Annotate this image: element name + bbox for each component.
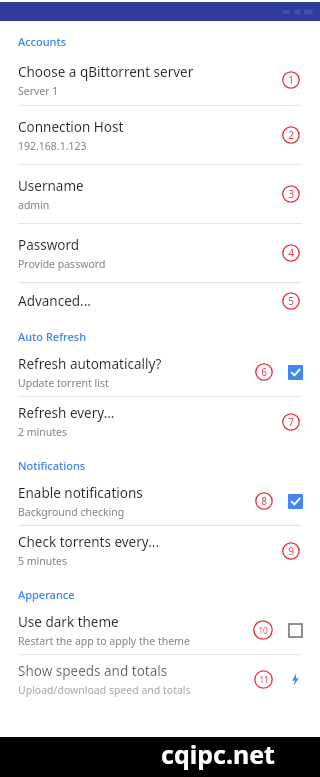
- staticText: Provide password: [18, 257, 106, 271]
- staticText: Username: [18, 177, 84, 195]
- staticText: Password: [18, 236, 80, 254]
- staticText: Update torrent list: [18, 376, 109, 390]
- staticText: 3: [288, 187, 294, 201]
- staticText: Choose a qBittorrent server: [18, 63, 194, 81]
- button[interactable]: Refresh automatically?: [0, 348, 320, 396]
- staticText: Background checking: [18, 505, 125, 519]
- staticText: Check torrents every...: [18, 533, 160, 551]
- button[interactable]: Use dark theme: [0, 606, 320, 654]
- button[interactable]: Enabled, checkbox: [288, 494, 303, 509]
- staticText: Restart the app to apply the theme: [18, 634, 190, 648]
- staticText: cqipc.net: [161, 737, 275, 771]
- button[interactable]: Show speeds: [288, 672, 303, 687]
- button[interactable]: Advanced...: [0, 283, 320, 319]
- staticText: admin: [18, 198, 50, 212]
- staticText: Connection Host: [18, 118, 124, 136]
- button[interactable]: Choose a qBittorrent server: [0, 55, 320, 105]
- staticText: 5: [288, 294, 294, 308]
- button[interactable]: Check torrents every...: [0, 526, 320, 575]
- button[interactable]: Show speeds and totals: [0, 655, 320, 704]
- staticText: 7: [288, 415, 294, 429]
- staticText: 1: [288, 73, 294, 87]
- staticText: Advanced...: [18, 292, 91, 310]
- staticText: 4: [288, 246, 294, 260]
- staticText: Upload/download speed and totals: [18, 683, 191, 697]
- staticText: 2: [288, 128, 294, 142]
- staticText: 2 minutes: [18, 425, 67, 439]
- staticText: Apperance: [18, 587, 320, 602]
- button[interactable]: Password: [0, 224, 320, 282]
- staticText: Enable notifications: [18, 484, 143, 502]
- button[interactable]: Enabled, checkbox: [288, 365, 303, 380]
- staticText: Server 1: [18, 84, 59, 98]
- button[interactable]: Connection Host: [0, 106, 320, 164]
- staticText: Show speeds and totals: [18, 662, 168, 680]
- staticText: Use dark theme: [18, 613, 119, 631]
- staticText: 192.168.1.123: [18, 139, 87, 153]
- staticText: Auto Refresh: [18, 329, 320, 344]
- button[interactable]: Enable notifications: [0, 477, 320, 525]
- staticText: 11: [259, 674, 269, 685]
- staticText: 8: [261, 494, 267, 508]
- button[interactable]: Disabled, checkbox: [288, 623, 303, 638]
- staticText: 5 minutes: [18, 554, 67, 568]
- button[interactable]: Refresh every...: [0, 397, 320, 446]
- staticText: 6: [261, 365, 267, 379]
- staticText: Accounts: [18, 34, 320, 49]
- staticText: Notifications: [18, 458, 320, 473]
- staticText: Refresh every...: [18, 404, 115, 422]
- staticText: Refresh automatically?: [18, 355, 162, 373]
- button[interactable]: Username: [0, 165, 320, 223]
- staticText: 9: [288, 544, 294, 558]
- staticText: 10: [258, 625, 268, 636]
